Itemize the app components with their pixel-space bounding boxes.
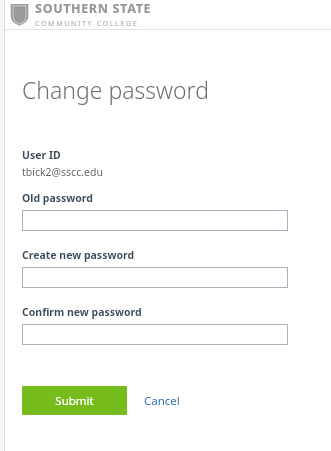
staticText: Change password <box>22 74 209 105</box>
staticText: Create new password <box>22 248 135 262</box>
other: Southern State Community College logo <box>10 3 29 26</box>
button[interactable]: Submit <box>22 386 127 415</box>
button[interactable] <box>22 267 288 288</box>
button[interactable] <box>22 324 288 345</box>
button[interactable]: Cancel <box>127 386 197 415</box>
staticText: Cancel <box>144 393 180 409</box>
staticText: COMMUNITY COLLEGE <box>35 18 139 28</box>
staticText: User ID <box>22 148 61 162</box>
button[interactable] <box>22 210 288 231</box>
staticText: SOUTHERN STATE <box>35 0 152 17</box>
staticText: tbick2@sscc.edu <box>22 165 103 179</box>
staticText: Confirm new password <box>22 305 142 319</box>
staticText: Old password <box>22 191 93 205</box>
staticText: Submit <box>55 393 94 409</box>
